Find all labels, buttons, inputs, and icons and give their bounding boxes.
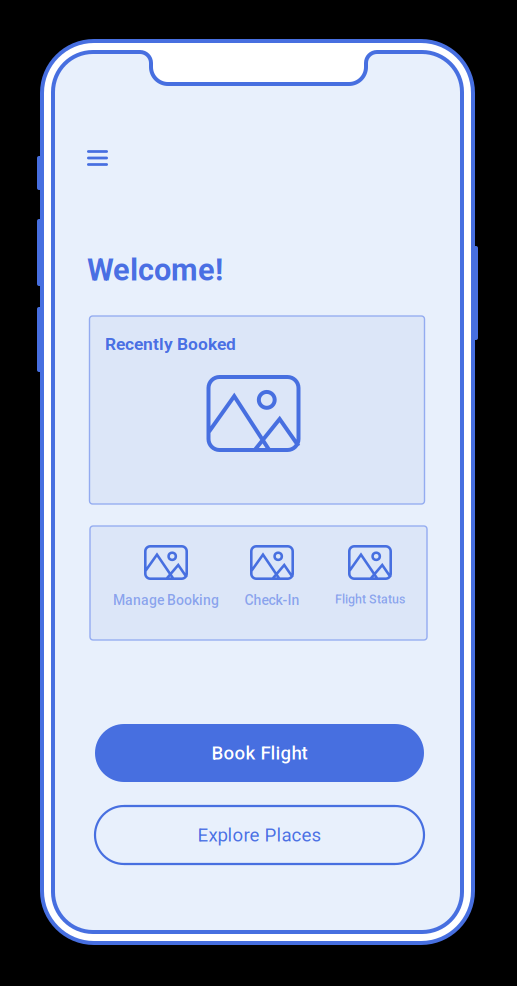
- button[interactable]: Manage Booking: [90, 526, 242, 640]
- staticText: Manage Booking: [113, 592, 219, 608]
- staticText: Recently Booked: [105, 334, 236, 354]
- button[interactable]: Book Flight: [95, 724, 424, 782]
- staticText: Welcome!: [87, 252, 223, 288]
- staticText: Check-In: [244, 592, 299, 608]
- button[interactable]: Flight Status: [315, 526, 425, 640]
- button[interactable]: Explore Places: [95, 806, 424, 864]
- staticText: Explore Places: [197, 824, 321, 846]
- button[interactable]: Check-In: [217, 526, 327, 640]
- button[interactable]: Menu: [87, 150, 108, 166]
- staticText: Flight Status: [335, 592, 405, 606]
- staticText: Book Flight: [211, 742, 307, 764]
